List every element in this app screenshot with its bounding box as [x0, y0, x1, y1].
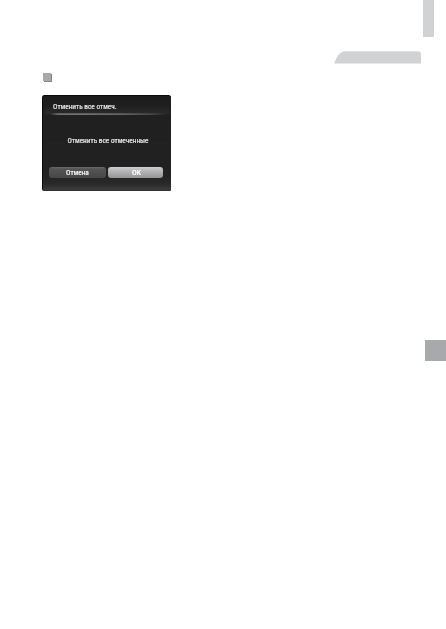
other: Selection marker — [43, 73, 52, 82]
staticText: OK — [132, 168, 141, 177]
button[interactable]: Отмена — [49, 167, 106, 178]
staticText: Отмена — [66, 168, 89, 177]
staticText: Отменить все отмеч. — [53, 102, 117, 111]
button[interactable]: OK — [108, 167, 163, 178]
staticText: Отменить все отмеченные — [44, 136, 171, 145]
